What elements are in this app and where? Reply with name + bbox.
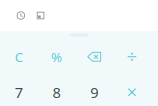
- button[interactable]: Divide: [113, 39, 151, 74]
- button[interactable]: 8: [38, 74, 75, 106]
- staticText: 8: [53, 82, 61, 102]
- button[interactable]: 9: [75, 74, 113, 106]
- button[interactable]: Keypad layout: [31, 0, 50, 31]
- button[interactable]: 7: [0, 74, 38, 106]
- staticText: %: [51, 48, 62, 66]
- staticText: C: [15, 48, 23, 66]
- button[interactable]: Percent: [38, 39, 75, 74]
- button[interactable]: Clear: [0, 39, 38, 74]
- staticText: 9: [90, 82, 98, 102]
- button[interactable]: Delete: [75, 39, 113, 74]
- button[interactable]: History: [11, 0, 31, 31]
- button[interactable]: Multiply: [113, 74, 151, 106]
- staticText: 7: [15, 82, 23, 102]
